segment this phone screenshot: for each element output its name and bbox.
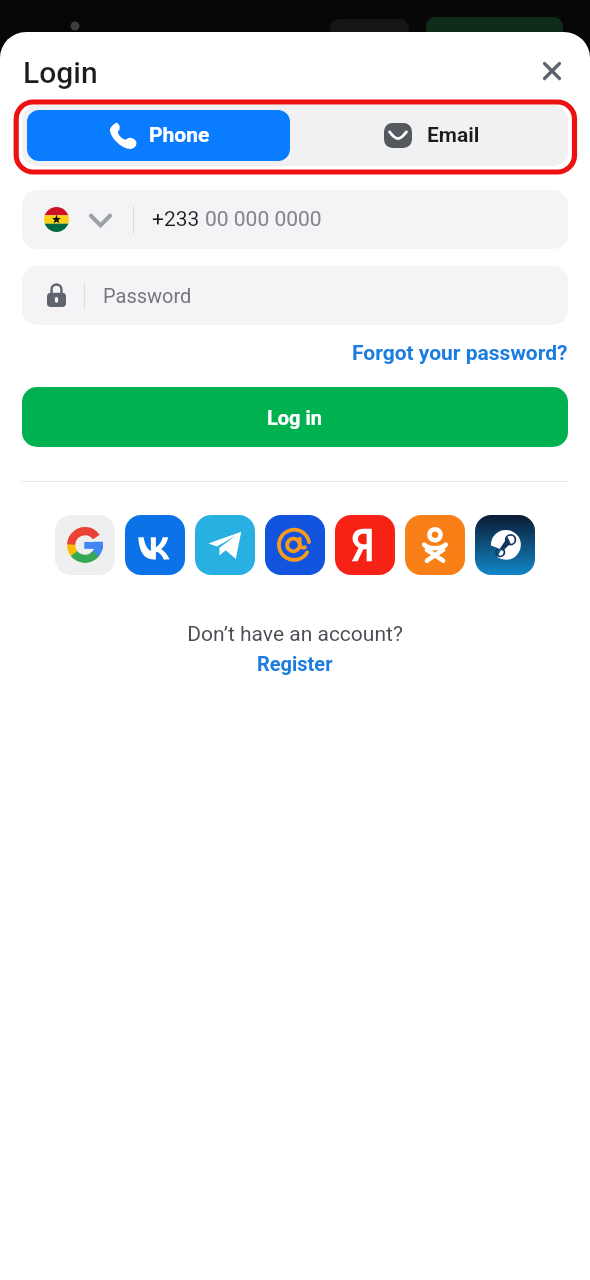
button[interactable]: Sign in with Yandex (335, 515, 395, 575)
button[interactable]: Forgot your password? (352, 341, 590, 366)
staticText: Password (103, 284, 192, 307)
staticText: Phone (149, 123, 210, 148)
button[interactable]: Sign in with Odnoklassniki (405, 515, 465, 575)
button[interactable]: Sign in with Mail.ru (265, 515, 325, 575)
staticText: Log in (267, 406, 323, 429)
button[interactable]: Close (530, 49, 574, 93)
button[interactable]: Sign in with VK (125, 515, 185, 575)
button[interactable]: Password (22, 266, 568, 325)
button[interactable]: Log in (22, 387, 568, 447)
button[interactable]: Sign in with Steam (475, 515, 535, 575)
button[interactable]: Sign in with Telegram (195, 515, 255, 575)
staticText: Login (23, 55, 98, 90)
staticText: Don’t have an account? (187, 622, 403, 647)
button[interactable]: Register (257, 652, 333, 675)
button[interactable]: Phone (27, 110, 290, 161)
staticText: Email (427, 123, 480, 148)
button[interactable]: +233 (22, 190, 568, 249)
staticText: +233 (152, 207, 200, 232)
staticText: 00 000 0000 (205, 207, 322, 232)
button[interactable]: Email (295, 105, 568, 166)
button[interactable]: Sign in with Google (55, 515, 115, 575)
